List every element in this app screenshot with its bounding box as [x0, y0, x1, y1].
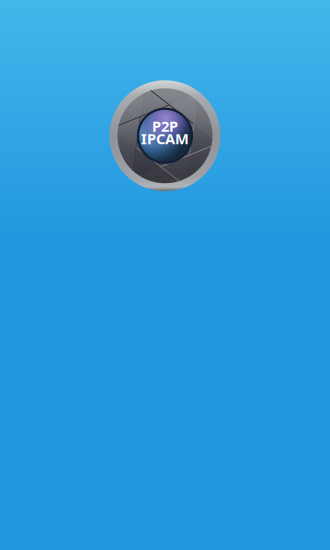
staticText: P2P: [152, 116, 178, 136]
staticText: IPCAM: [141, 129, 189, 148]
